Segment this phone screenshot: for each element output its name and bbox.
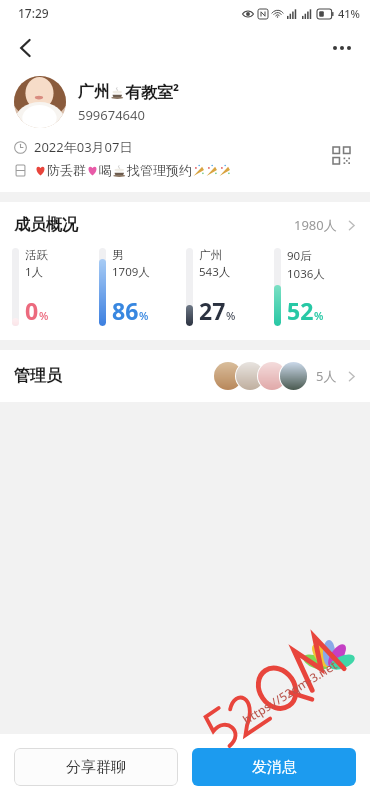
staticText: 分享群聊	[66, 758, 126, 777]
button[interactable]: More options	[322, 28, 362, 68]
staticText: 1036人	[287, 266, 325, 282]
staticText: 27	[199, 295, 226, 326]
staticText: 0	[25, 295, 39, 326]
button[interactable]: 广州	[186, 248, 274, 326]
staticText: 广州	[199, 248, 222, 262]
button[interactable]: 广州	[14, 76, 356, 128]
staticText: 喝	[99, 162, 112, 178]
staticText: 52	[287, 295, 314, 326]
staticText: 2022年03月07日	[34, 138, 133, 156]
button[interactable]: 分享群聊	[14, 748, 178, 786]
button[interactable]: 男	[99, 248, 186, 326]
staticText: 防丢群	[47, 162, 86, 178]
staticText: https://52qm-3.net	[239, 656, 340, 728]
staticText: 90后	[287, 248, 312, 264]
staticText: 41%	[338, 6, 360, 21]
button[interactable]: Back	[6, 28, 46, 68]
staticText: %	[314, 308, 324, 323]
staticText: 男	[112, 248, 124, 262]
staticText: 成员概况	[14, 215, 78, 235]
staticText: 活跃	[25, 248, 48, 262]
button[interactable]: 活跃	[12, 248, 99, 326]
staticText: 找管理预约	[127, 162, 192, 178]
button[interactable]: 成员概况	[0, 202, 370, 248]
button[interactable]: QR code	[326, 140, 356, 170]
staticText: 1980人	[294, 216, 337, 234]
staticText: 86	[112, 295, 139, 326]
staticText: 发消息	[252, 758, 297, 777]
staticText: 管理员	[14, 366, 62, 386]
staticText: 17:29	[18, 5, 49, 21]
staticText: 1人	[25, 264, 44, 280]
staticText: %	[226, 308, 236, 323]
staticText: 1709人	[112, 264, 150, 280]
staticText: %	[39, 308, 49, 323]
staticText: 广州	[78, 82, 110, 102]
button[interactable]: 发消息	[192, 748, 356, 786]
staticText: 599674640	[78, 106, 145, 124]
button[interactable]: 管理员	[0, 350, 370, 402]
staticText: 5人	[316, 367, 337, 385]
button[interactable]: 90后	[274, 248, 362, 326]
staticText: 543人	[199, 264, 231, 280]
staticText: 有教室²	[125, 81, 180, 103]
staticText: %	[139, 308, 149, 323]
